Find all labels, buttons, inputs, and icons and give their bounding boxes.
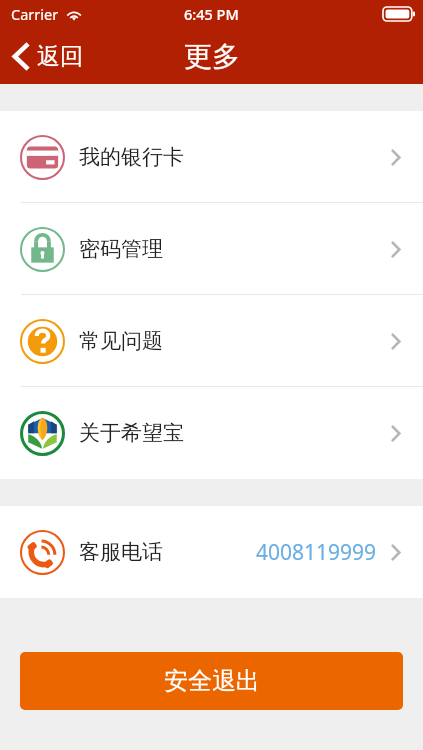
- staticText: 常见问题: [79, 328, 163, 354]
- button[interactable]: 返回: [8, 36, 87, 77]
- button[interactable]: 客服电话: [0, 506, 423, 598]
- staticText: 我的银行卡: [79, 144, 184, 170]
- staticText: 更多: [184, 39, 240, 74]
- button[interactable]: 安全退出: [20, 652, 403, 710]
- staticText: 关于希望宝: [79, 420, 184, 446]
- staticText: 6:45 PM: [184, 4, 239, 24]
- button[interactable]: 我的银行卡: [0, 111, 423, 203]
- staticText: 安全退出: [164, 666, 260, 696]
- button[interactable]: 密码管理: [0, 203, 423, 295]
- staticText: 4008119999: [256, 538, 377, 567]
- staticText: 客服电话: [79, 539, 163, 565]
- staticText: 密码管理: [79, 236, 163, 262]
- staticText: Carrier: [11, 4, 59, 24]
- button[interactable]: 常见问题: [0, 295, 423, 387]
- button[interactable]: 关于希望宝: [0, 387, 423, 479]
- staticText: 返回: [37, 42, 83, 71]
